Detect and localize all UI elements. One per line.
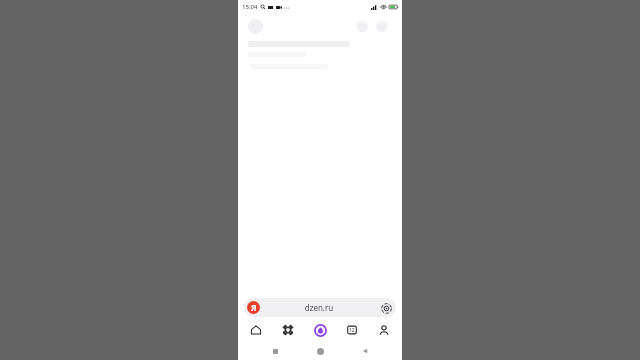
button[interactable]: Alice [306, 320, 334, 340]
button[interactable]: Yandex [247, 301, 260, 314]
staticText: 12 [349, 327, 355, 334]
button[interactable]: Yandex [244, 298, 396, 317]
button[interactable]: Services [274, 320, 302, 340]
button[interactable]: Search by image [378, 300, 394, 316]
button[interactable]: Back [357, 343, 373, 359]
staticText: Я [251, 302, 257, 313]
button[interactable]: Tabs [338, 320, 366, 340]
button[interactable]: Home [312, 343, 328, 359]
button[interactable]: Recents [267, 343, 283, 359]
staticText: 15:04 [242, 3, 258, 11]
button[interactable]: Profile [370, 320, 398, 340]
staticText: dzen.ru [260, 302, 378, 313]
button[interactable]: Home [242, 320, 270, 340]
